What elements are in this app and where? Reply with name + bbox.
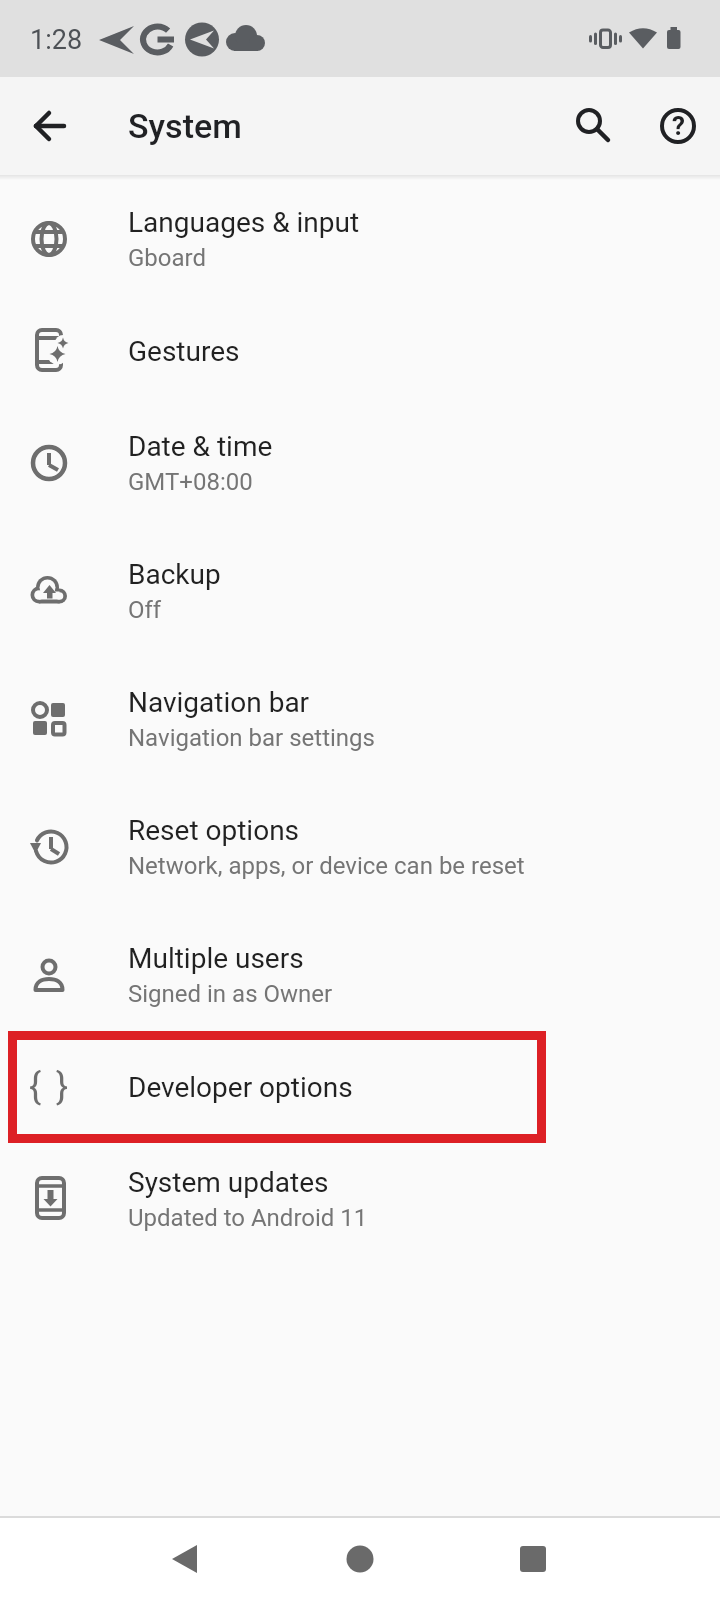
button[interactable]: ? xyxy=(654,102,702,150)
staticText: Updated to Android 11 xyxy=(128,1204,368,1232)
button[interactable]: Date & time xyxy=(0,399,720,527)
button[interactable]: Navigation bar xyxy=(0,655,720,783)
staticText: System updates xyxy=(128,1166,329,1199)
staticText: Backup xyxy=(128,558,221,591)
staticText: Languages & input xyxy=(128,206,360,239)
button[interactable] xyxy=(336,1535,384,1583)
staticText: Reset options xyxy=(128,814,300,847)
button[interactable] xyxy=(509,1535,557,1583)
staticText: Gboard xyxy=(128,244,207,272)
staticText: 1:28 xyxy=(30,24,83,56)
button[interactable]: System updates xyxy=(0,1135,720,1263)
button[interactable]: { } xyxy=(0,1039,720,1135)
staticText: Network, apps, or device can be reset xyxy=(128,852,525,880)
staticText: GMT+08:00 xyxy=(128,468,253,496)
staticText: Off xyxy=(128,596,162,624)
staticText: ? xyxy=(672,111,685,141)
button[interactable] xyxy=(161,1535,209,1583)
button[interactable]: Gestures xyxy=(0,303,720,399)
staticText: Developer options xyxy=(128,1071,353,1104)
button[interactable]: Languages & input xyxy=(0,175,720,303)
button[interactable]: Reset options xyxy=(0,783,720,911)
staticText: System xyxy=(128,106,242,146)
button[interactable] xyxy=(568,102,616,150)
staticText: Gestures xyxy=(128,335,240,368)
staticText: { } xyxy=(29,1066,72,1108)
staticText: Date & time xyxy=(128,430,273,463)
staticText: Multiple users xyxy=(128,942,304,975)
button[interactable]: Backup xyxy=(0,527,720,655)
staticText: Navigation bar settings xyxy=(128,724,375,752)
button[interactable]: Multiple users xyxy=(0,911,720,1039)
staticText: Signed in as Owner xyxy=(128,980,333,1008)
button[interactable] xyxy=(26,102,74,150)
staticText: Navigation bar xyxy=(128,686,310,719)
